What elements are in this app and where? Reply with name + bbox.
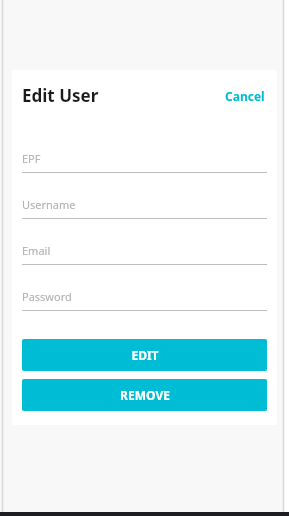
staticText: Username (22, 197, 76, 212)
staticText: Edit User (22, 84, 99, 107)
button[interactable]: Username (22, 193, 267, 219)
button[interactable]: Email (22, 239, 267, 265)
staticText: EPF (22, 151, 41, 166)
button[interactable]: Cancel (223, 86, 267, 106)
button[interactable]: REMOVE (22, 379, 267, 411)
button[interactable]: EPF (22, 147, 267, 173)
staticText: Cancel (225, 88, 265, 104)
staticText: REMOVE (120, 387, 170, 403)
button[interactable]: EDIT (22, 339, 267, 371)
button[interactable]: Password (22, 285, 267, 311)
staticText: Email (22, 243, 51, 258)
staticText: Password (22, 289, 72, 304)
staticText: EDIT (131, 347, 159, 363)
